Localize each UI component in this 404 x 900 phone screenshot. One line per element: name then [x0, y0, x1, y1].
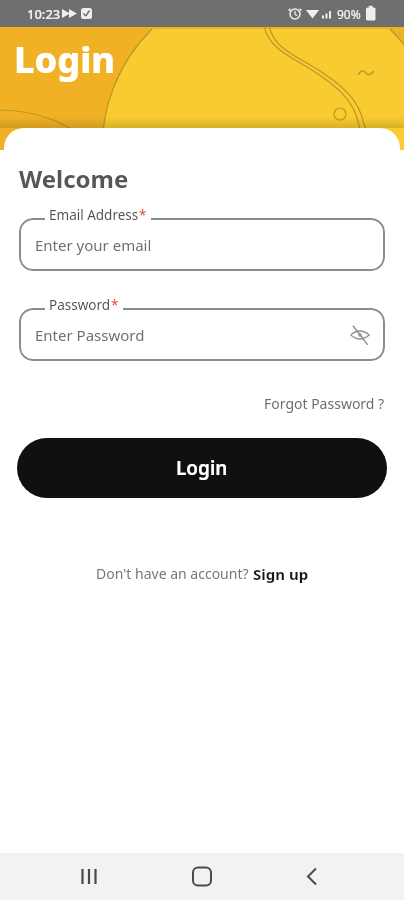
- button[interactable]: Enter Password: [19, 308, 385, 361]
- staticText: *: [111, 296, 119, 314]
- button[interactable]: [65, 853, 113, 900]
- staticText: Password: [49, 296, 111, 314]
- button[interactable]: [288, 853, 336, 900]
- button[interactable]: Sign up: [253, 564, 309, 584]
- staticText: Enter Password: [35, 325, 145, 345]
- staticText: Welcome: [19, 162, 129, 195]
- button[interactable]: Forgot Password ?: [264, 394, 385, 413]
- button[interactable]: [178, 853, 226, 900]
- staticText: 10:23: [27, 5, 61, 23]
- button[interactable]: Login: [17, 438, 387, 498]
- staticText: 90%: [337, 6, 361, 22]
- staticText: Don't have an account?: [96, 564, 253, 583]
- staticText: Enter your email: [35, 235, 152, 255]
- button[interactable]: [349, 324, 371, 346]
- staticText: *: [139, 206, 147, 224]
- staticText: Email Address: [49, 206, 139, 224]
- staticText: Login: [14, 35, 116, 84]
- staticText: Login: [176, 455, 228, 481]
- button[interactable]: Enter your email: [19, 218, 385, 271]
